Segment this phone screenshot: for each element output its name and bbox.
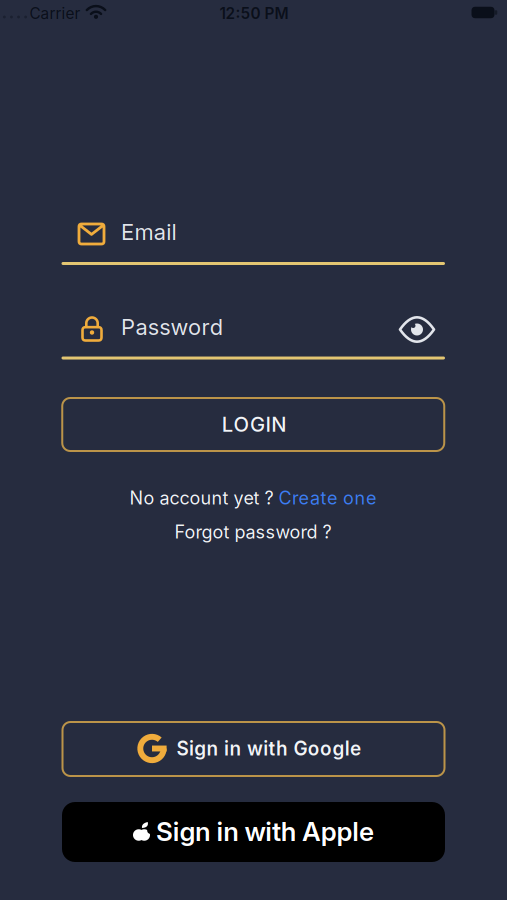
staticText: Sign in with Apple [156,816,374,847]
staticText: Password [121,314,223,340]
staticText: Sign in with Google [177,737,361,760]
staticText: Forgot password ? [174,521,331,543]
staticText: Email [121,219,177,245]
staticText: Create one [279,487,376,509]
staticText: LOGIN [222,412,286,437]
staticText: 12:50 PM [219,4,288,23]
staticText: No account yet ? [130,487,274,509]
staticText: Carrier [29,4,80,23]
